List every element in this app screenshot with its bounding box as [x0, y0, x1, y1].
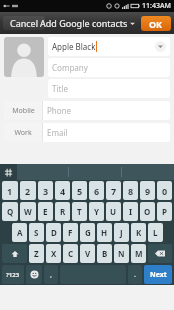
staticText: Phone: [47, 105, 72, 116]
button[interactable]: Title: [48, 79, 170, 98]
button[interactable]: I: [123, 202, 138, 221]
button[interactable]: Z: [29, 244, 44, 263]
button[interactable]: Q: [2, 202, 18, 221]
button[interactable]: 0: [157, 181, 172, 200]
button[interactable]: K: [131, 223, 146, 242]
button[interactable]: OK: [141, 16, 171, 31]
staticText: Z: [34, 248, 39, 259]
button[interactable]: Next: [144, 265, 172, 284]
staticText: H: [101, 227, 108, 238]
staticText: K: [136, 227, 142, 238]
button[interactable]: 8: [123, 181, 138, 200]
staticText: T: [77, 206, 82, 217]
staticText: Y: [94, 206, 100, 217]
button[interactable]: 7: [106, 181, 121, 200]
staticText: Work: [14, 128, 32, 138]
button[interactable]: T: [72, 202, 87, 221]
button[interactable]: Expand name: [155, 41, 166, 52]
button[interactable]: D: [46, 223, 61, 242]
button[interactable]: V: [80, 244, 95, 263]
staticText: I: [129, 206, 133, 217]
button[interactable]: Cancel: [3, 16, 45, 30]
staticText: 11:43AM: [142, 1, 171, 11]
staticText: ?123: [6, 271, 20, 279]
staticText: 1: [7, 185, 13, 197]
button[interactable]: Apple Black: [48, 37, 170, 56]
button[interactable]: J: [114, 223, 129, 242]
button[interactable]: ?123: [2, 265, 24, 284]
button[interactable]: Work: [4, 123, 170, 142]
button[interactable]: W: [20, 202, 36, 221]
button[interactable]: 9: [140, 181, 155, 200]
staticText: 5: [77, 185, 83, 197]
staticText: 4: [60, 185, 66, 197]
button[interactable]: P: [157, 202, 172, 221]
staticText: B: [102, 248, 108, 259]
staticText: Cancel: [10, 17, 39, 29]
button[interactable]: Y: [89, 202, 104, 221]
staticText: C: [68, 248, 74, 259]
button[interactable]: A: [12, 223, 27, 242]
button[interactable]: L: [148, 223, 163, 242]
button[interactable]: Backspace: [148, 244, 172, 263]
button[interactable]: R: [55, 202, 70, 221]
button[interactable]: N: [114, 244, 129, 263]
button[interactable]: G: [80, 223, 95, 242]
staticText: Email: [47, 127, 68, 138]
staticText: J: [120, 227, 123, 238]
staticText: L: [153, 227, 158, 238]
button[interactable]: 1: [2, 181, 18, 200]
button[interactable]: O: [140, 202, 155, 221]
button[interactable]: ,: [44, 265, 58, 284]
button[interactable]: Company: [48, 58, 170, 77]
button[interactable]: 4: [55, 181, 70, 200]
staticText: M: [135, 248, 143, 259]
button[interactable]: 6: [89, 181, 104, 200]
staticText: 7: [111, 185, 117, 197]
staticText: 6: [94, 185, 100, 197]
button[interactable]: Mobile: [4, 101, 170, 120]
staticText: OK: [149, 18, 163, 30]
staticText: G: [85, 227, 91, 238]
staticText: X: [51, 248, 57, 259]
button[interactable]: Add Google contacts: [40, 17, 135, 29]
button[interactable]: U: [106, 202, 121, 221]
button[interactable]: Input method: [0, 164, 17, 180]
button[interactable]: .: [128, 265, 142, 284]
staticText: Apple Black: [52, 41, 96, 52]
staticText: 2: [25, 185, 31, 197]
button[interactable]: C: [63, 244, 78, 263]
button[interactable]: Contact photo: [4, 37, 44, 77]
staticText: .: [134, 270, 136, 280]
button[interactable]: 5: [72, 181, 87, 200]
button[interactable]: S: [29, 223, 44, 242]
staticText: N: [118, 248, 125, 259]
button[interactable]: M: [131, 244, 146, 263]
staticText: Q: [7, 206, 14, 217]
button[interactable]: E: [38, 202, 53, 221]
staticText: Company: [52, 62, 88, 73]
button[interactable]: 3: [38, 181, 53, 200]
staticText: R: [60, 206, 66, 217]
button[interactable]: B: [97, 244, 112, 263]
staticText: Title: [52, 83, 68, 94]
staticText: 0: [162, 185, 168, 197]
staticText: W: [24, 206, 32, 217]
staticText: A: [17, 227, 23, 238]
staticText: Next: [150, 270, 167, 280]
button[interactable]: Shift: [2, 244, 27, 263]
button[interactable]: Emoji: [26, 265, 42, 284]
button[interactable]: H: [97, 223, 112, 242]
staticText: S: [34, 227, 39, 238]
button[interactable]: F: [63, 223, 78, 242]
staticText: F: [68, 227, 73, 238]
staticText: D: [51, 227, 57, 238]
button[interactable]: X: [46, 244, 61, 263]
button[interactable]: 2: [20, 181, 36, 200]
staticText: E: [43, 206, 48, 217]
